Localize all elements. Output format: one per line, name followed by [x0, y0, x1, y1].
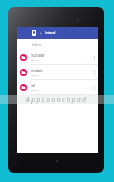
staticText: 4 [85, 56, 87, 59]
staticText: AppLaunchpad [26, 95, 88, 104]
staticText: emulated [31, 69, 43, 73]
other: Internal storage [32, 30, 36, 36]
staticText: Folders [32, 43, 41, 47]
staticText: Internal [45, 31, 56, 35]
button[interactable]: More options [92, 52, 96, 64]
staticText: 4 [85, 86, 87, 89]
staticText: Sep 10 [31, 59, 39, 62]
button[interactable]: More options [92, 67, 96, 79]
button[interactable]: emulated [17, 65, 98, 80]
button[interactable]: More options [92, 82, 96, 94]
button[interactable]: self [17, 80, 98, 95]
staticText: Sep 10 [31, 74, 39, 77]
button[interactable]: Internal storage [17, 27, 98, 39]
staticText: 9C2D-6EB8 [31, 54, 44, 58]
staticText: self [31, 84, 35, 88]
staticText: 4 [85, 71, 87, 74]
button[interactable]: 9C2D-6EB8 [17, 50, 98, 65]
staticText: Sep 10 [31, 89, 39, 92]
